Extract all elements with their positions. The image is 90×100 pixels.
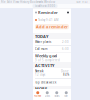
staticText: Add a reminder — [36, 24, 68, 29]
button[interactable]: Water plants — [33, 39, 71, 45]
button[interactable]: Call mum — [33, 46, 71, 52]
staticText: ACTIVITY — [35, 63, 55, 68]
button[interactable]: Add a reminder — [35, 24, 69, 29]
staticText: Call mum — [35, 47, 47, 51]
staticText: MORE — [35, 86, 47, 91]
staticText: Today 9:41 AM — [38, 18, 58, 22]
button[interactable]: Lists — [42, 89, 52, 100]
staticText: 3 of 5 completed — [35, 58, 60, 62]
staticText: 12 days — [35, 73, 45, 76]
staticText: File Edit View History Bookmarks Window — [1, 0, 55, 4]
staticText: Tue 9:41 — [76, 0, 89, 4]
staticText: TODAY — [35, 34, 49, 39]
staticText: Me — [64, 94, 68, 98]
staticText: localhost:3000 — [34, 4, 55, 8]
staticText: Stats — [54, 94, 59, 98]
staticText: Reminder — [38, 10, 58, 15]
staticText: Weekly goal — [35, 53, 57, 58]
staticText: Lists — [45, 94, 50, 98]
button[interactable]: Home — [33, 89, 42, 100]
staticText: Streak — [35, 69, 44, 73]
staticText: Water plants — [35, 40, 51, 44]
button[interactable]: Stats — [52, 89, 61, 100]
staticText: 84% — [63, 73, 69, 76]
staticText: 2:00 — [62, 40, 69, 44]
staticText: 6:30 — [62, 47, 69, 51]
staticText: Top streak week — [35, 81, 56, 84]
staticText: Done — [61, 69, 69, 73]
staticText: Home — [34, 94, 42, 98]
button[interactable]: Me — [61, 89, 71, 100]
